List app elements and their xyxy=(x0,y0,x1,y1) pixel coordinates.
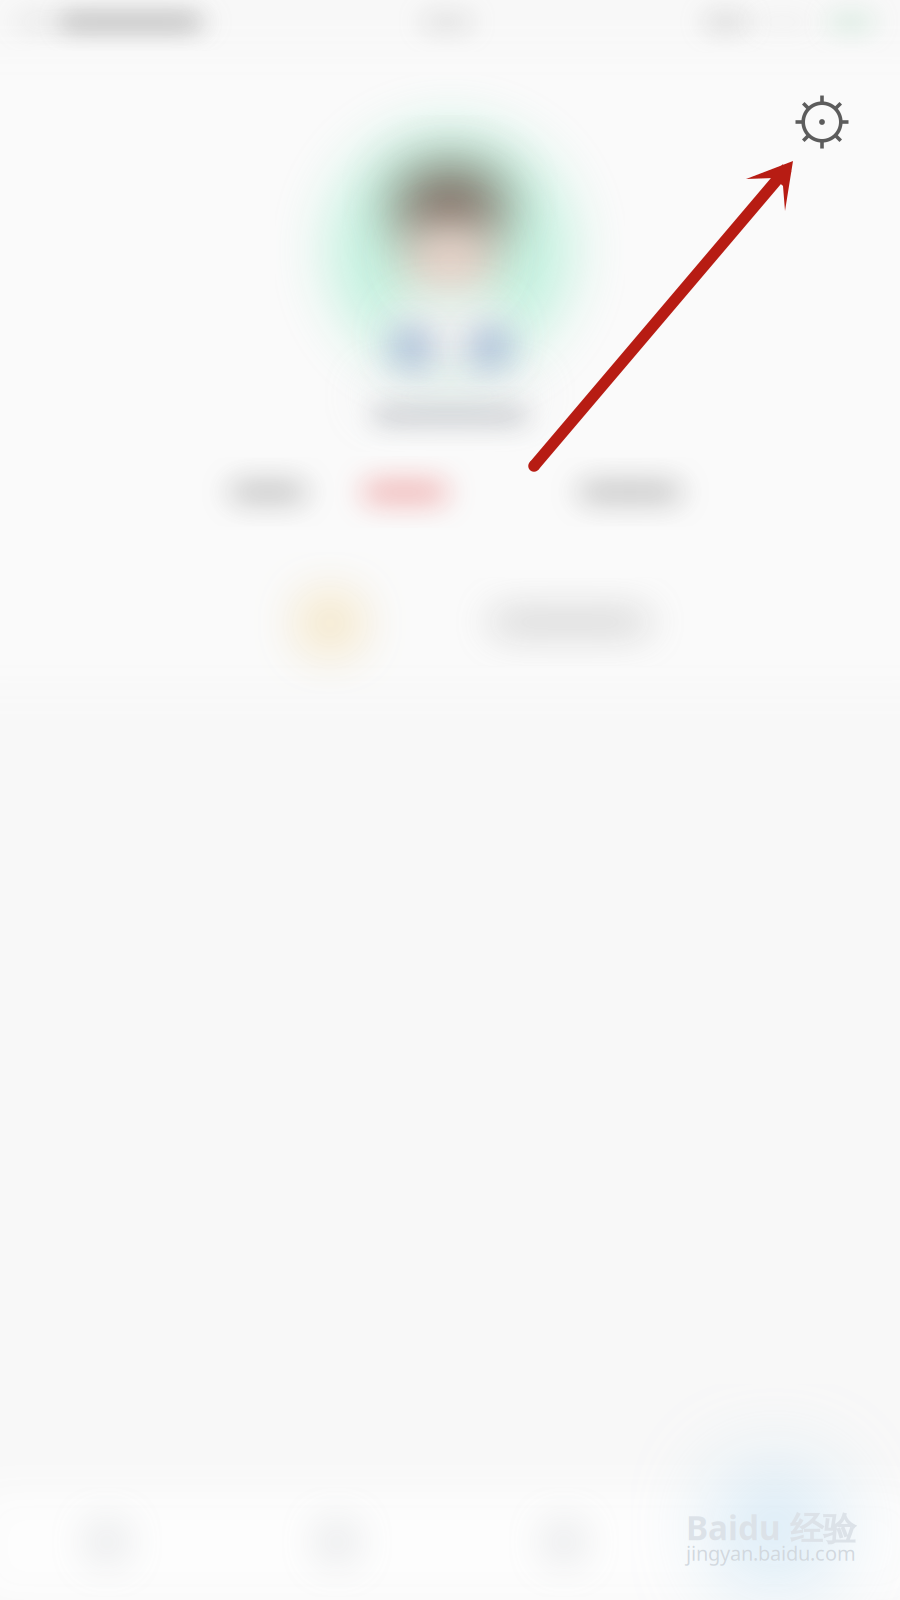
staticText: Baidu 经验 xyxy=(686,1505,856,1550)
button[interactable]: Settings xyxy=(774,74,870,170)
staticText: jingyan.baidu.com xyxy=(686,1540,856,1566)
